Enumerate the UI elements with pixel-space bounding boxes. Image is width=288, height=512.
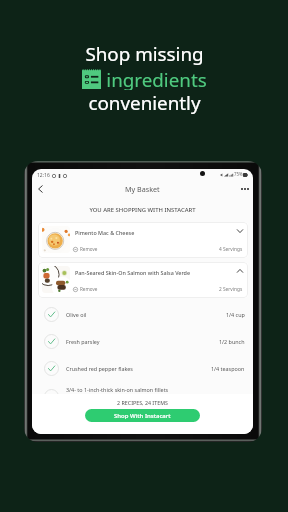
staticText: 3/4- to 1-inch-thick skin-on salmon fill… xyxy=(66,386,169,393)
staticText: 4 Servings xyxy=(219,246,243,253)
button[interactable]: Crushed red pepper flakes xyxy=(32,355,253,382)
staticText: YOU ARE SHOPPING WITH INSTACART xyxy=(32,206,253,214)
button[interactable]: Pimento Mac & Cheese xyxy=(38,222,248,258)
staticText: Pimento Mac & Cheese xyxy=(75,229,135,236)
staticText: 1/2 bunch xyxy=(219,338,245,345)
button[interactable]: Olive oil xyxy=(32,301,253,328)
button[interactable]: Fresh parsley xyxy=(32,328,253,355)
staticText: Olive oil xyxy=(66,311,87,318)
staticText: ingredients xyxy=(106,67,207,90)
button[interactable]: More options xyxy=(238,182,252,196)
staticText: 12:16 xyxy=(37,172,50,179)
staticText: 2 Servings xyxy=(219,286,243,293)
staticText: My Basket xyxy=(125,184,160,194)
staticText: Shop With Instacart xyxy=(114,412,171,420)
staticText: Remove xyxy=(80,246,98,252)
staticText: Pan-Seared Skin-On Salmon with Salsa Ver… xyxy=(75,269,191,276)
staticText: 1/4 teaspoon xyxy=(211,365,245,372)
staticText: 2 RECIPES, 24 ITEMS xyxy=(32,399,253,406)
staticText: Remove xyxy=(80,286,98,292)
button[interactable]: Pan-Seared Skin-On Salmon with Salsa Ver… xyxy=(38,262,248,298)
button[interactable]: Back xyxy=(33,182,47,196)
staticText: 1/4 cup xyxy=(226,311,245,318)
staticText: Shop missing xyxy=(85,41,204,67)
button[interactable]: Shop With Instacart xyxy=(85,409,200,422)
staticText: conveniently xyxy=(88,90,201,116)
staticText: Fresh parsley xyxy=(66,338,100,345)
staticText: Crushed red pepper flakes xyxy=(66,365,133,372)
staticText: 75% xyxy=(234,171,243,177)
